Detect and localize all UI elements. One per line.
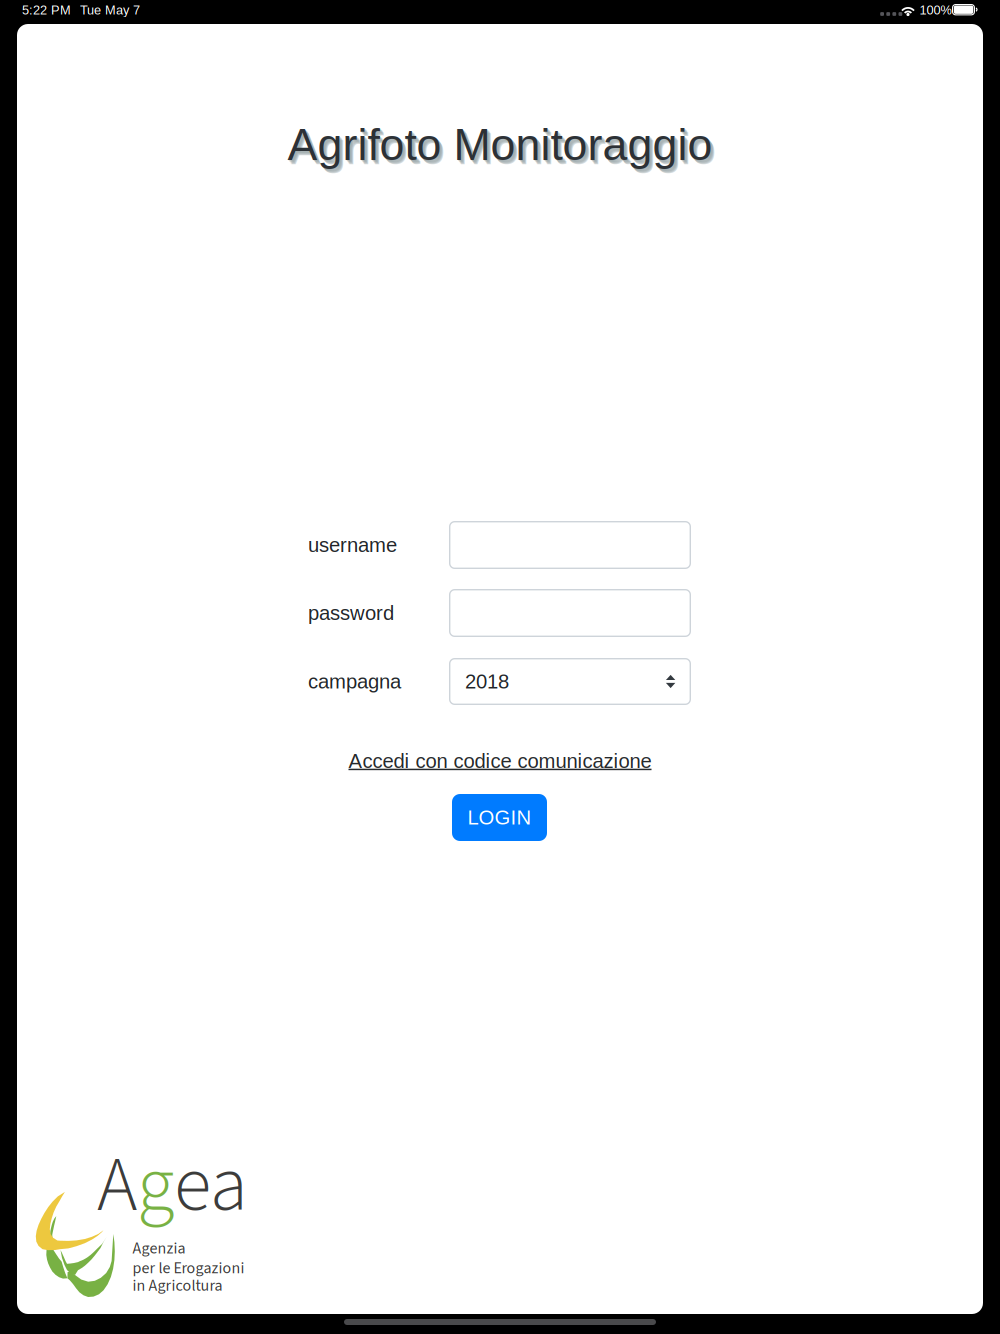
staticText: LOGIN	[467, 806, 531, 829]
staticText: username	[308, 534, 397, 556]
staticText: A	[97, 1131, 137, 1240]
staticText: Agrifoto Monitoraggio	[287, 119, 712, 169]
staticText: Agenzia	[132, 1237, 185, 1260]
staticText: Agrifoto Monitoraggio	[291, 124, 716, 174]
staticText: campagna	[308, 670, 401, 693]
button[interactable]: username	[449, 521, 691, 569]
staticText: password	[308, 602, 394, 624]
staticText: Agrifoto Monitoraggio	[291, 123, 716, 173]
button[interactable]: password	[449, 589, 691, 637]
button[interactable]: LOGIN	[452, 794, 547, 841]
staticText: Tue May 7	[80, 3, 140, 17]
staticText: per le Erogazioni	[132, 1257, 244, 1280]
staticText: 2018	[465, 670, 509, 693]
staticText: Accedi con codice comunicazione	[348, 750, 651, 772]
staticText: Agrifoto Monitoraggio	[288, 120, 713, 170]
staticText: Agrifoto Monitoraggio	[289, 121, 714, 171]
staticText: 100%	[919, 3, 951, 17]
staticText: 5:22 PM	[22, 3, 71, 17]
button[interactable]: Accedi con codice comunicazione	[0, 742, 1000, 780]
staticText: Agrifoto Monitoraggio	[290, 122, 715, 172]
staticText: in Agricoltura	[132, 1274, 222, 1297]
staticText: g	[137, 1131, 174, 1240]
button[interactable]: campagna	[449, 658, 691, 705]
staticText: ea	[174, 1131, 248, 1240]
